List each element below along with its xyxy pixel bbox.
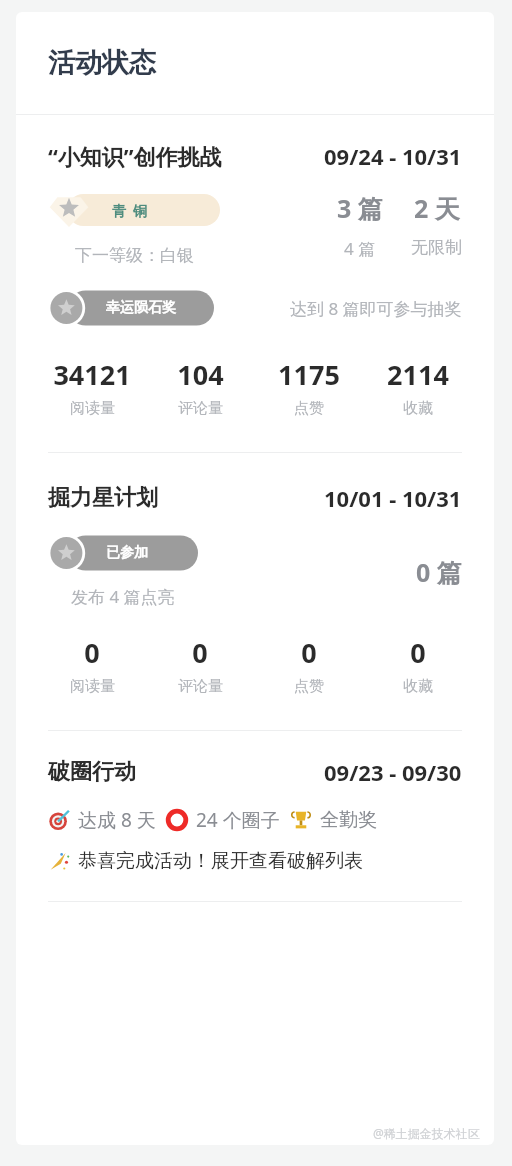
button[interactable]: 恭喜完成活动！展开查看破解列表 xyxy=(48,849,462,873)
staticText: 4 篇 xyxy=(344,237,376,260)
staticText: 活动状态 xyxy=(48,46,156,80)
staticText: 2 天 xyxy=(414,191,460,225)
button[interactable]: 已参加 xyxy=(48,533,198,573)
staticText: 评论量 xyxy=(178,677,223,696)
button[interactable]: 青铜等级徽章 xyxy=(48,189,220,231)
staticText: 评论量 xyxy=(178,399,223,418)
staticText: 0 xyxy=(410,634,426,671)
button[interactable]: 活动状态 xyxy=(16,12,494,114)
staticText: @稀土掘金技术社区 xyxy=(373,1125,480,1141)
staticText: 全勤奖 xyxy=(320,808,377,832)
staticText: 阅读量 xyxy=(70,677,115,696)
staticText: 阅读量 xyxy=(70,399,115,418)
staticText: 0 篇 xyxy=(416,555,462,589)
staticText: 达到 8 篇即可参与抽奖 xyxy=(290,297,462,320)
staticText: 24 个圈子 xyxy=(196,807,280,833)
staticText: 青 铜 xyxy=(112,201,148,220)
button[interactable]: 幸运陨石奖 xyxy=(48,288,214,328)
staticText: 09/23 - 09/30 xyxy=(324,757,462,787)
staticText: 收藏 xyxy=(403,677,433,696)
staticText: 3 篇 xyxy=(337,191,383,225)
staticText: 无限制 xyxy=(411,237,462,258)
staticText: 达成 8 天 xyxy=(78,807,156,833)
staticText: 34121 xyxy=(53,356,131,393)
staticText: 09/24 - 10/31 xyxy=(324,141,462,171)
staticText: 0 xyxy=(192,634,208,671)
staticText: 1175 xyxy=(278,356,340,393)
staticText: 已参加 xyxy=(106,544,148,562)
staticText: 恭喜完成活动！展开查看破解列表 xyxy=(78,849,363,873)
staticText: 10/01 - 10/31 xyxy=(324,483,462,513)
staticText: 下一等级：白银 xyxy=(75,245,194,266)
staticText: “小知识”创作挑战 xyxy=(48,141,222,171)
staticText: 2114 xyxy=(387,356,449,393)
staticText: 破圈行动 xyxy=(48,758,136,786)
staticText: 掘力星计划 xyxy=(48,484,158,512)
staticText: 发布 4 篇点亮 xyxy=(71,585,175,608)
staticText: 0 xyxy=(84,634,100,671)
staticText: 点赞 xyxy=(294,399,324,418)
staticText: 0 xyxy=(301,634,317,671)
staticText: 收藏 xyxy=(403,399,433,418)
staticText: 104 xyxy=(177,356,224,393)
staticText: 幸运陨石奖 xyxy=(106,299,176,317)
staticText: 点赞 xyxy=(294,677,324,696)
